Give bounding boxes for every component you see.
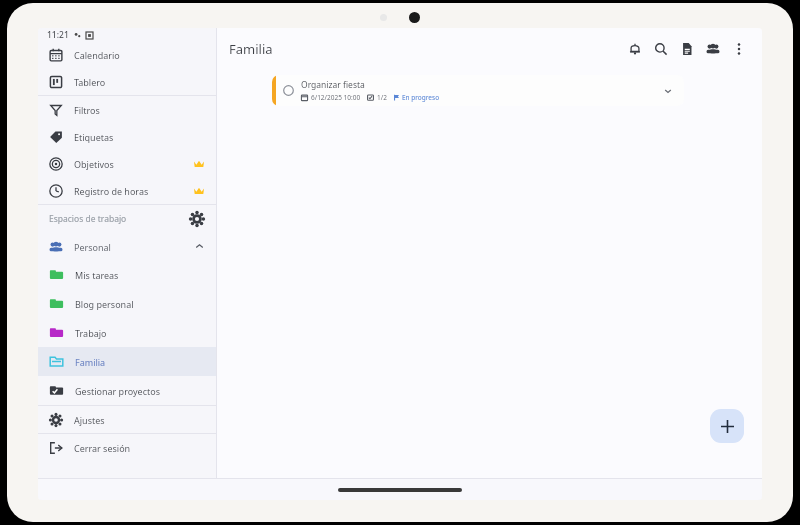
staticText: Familia xyxy=(229,40,273,58)
button[interactable]: Miembros xyxy=(700,36,726,62)
staticText: 6/12/2025 10:00 xyxy=(311,93,361,102)
button[interactable]: Añadir tarea xyxy=(710,409,744,443)
staticText: Cerrar sesión xyxy=(74,442,131,454)
staticText: Blog personal xyxy=(75,298,134,310)
staticText: 1/2 xyxy=(377,93,387,102)
staticText: En progreso xyxy=(402,93,440,102)
button[interactable]: Más opciones xyxy=(726,36,752,62)
staticText: Calendario xyxy=(74,49,120,61)
staticText: Trabajo xyxy=(75,327,107,339)
staticText: Objetivos xyxy=(74,158,114,170)
button[interactable]: Objetivos xyxy=(38,150,216,177)
staticText: Filtros xyxy=(74,104,100,116)
button[interactable]: Filtros xyxy=(38,96,216,123)
button[interactable]: Trabajo xyxy=(38,318,216,347)
staticText: Organizar fiesta xyxy=(301,79,365,91)
staticText: 11:21 xyxy=(47,29,69,41)
button[interactable]: Mis tareas xyxy=(38,260,216,289)
staticText: Gestionar proyectos xyxy=(75,385,160,397)
button[interactable]: Notificaciones xyxy=(622,36,648,62)
button[interactable]: Organizar fiesta xyxy=(272,75,684,106)
staticText: Mis tareas xyxy=(75,269,119,281)
staticText: Tablero xyxy=(74,76,106,88)
staticText: Registro de horas xyxy=(74,185,149,197)
button[interactable]: Registro de horas xyxy=(38,177,216,204)
button[interactable]: Gestionar proyectos xyxy=(38,376,216,405)
button[interactable]: Blog personal xyxy=(38,289,216,318)
staticText: Etiquetas xyxy=(74,131,114,143)
button[interactable]: Tablero xyxy=(38,68,216,95)
staticText: Familia xyxy=(75,356,106,368)
button[interactable]: Documento xyxy=(674,36,700,62)
button[interactable]: Familia xyxy=(38,347,216,376)
button[interactable]: Cerrar sesión xyxy=(38,434,216,461)
button[interactable]: Etiquetas xyxy=(38,123,216,150)
button[interactable]: Personal xyxy=(38,233,216,260)
staticText: Personal xyxy=(74,241,111,253)
button[interactable]: Ajustes xyxy=(38,406,216,433)
button[interactable]: Espacios de trabajo xyxy=(38,205,216,233)
other: Configurar espacios xyxy=(189,211,205,227)
staticText: Ajustes xyxy=(74,414,105,426)
button[interactable]: Buscar xyxy=(648,36,674,62)
button[interactable]: Calendario xyxy=(38,41,216,68)
button[interactable]: Expandir xyxy=(660,83,676,99)
staticText: Espacios de trabajo xyxy=(49,213,127,225)
